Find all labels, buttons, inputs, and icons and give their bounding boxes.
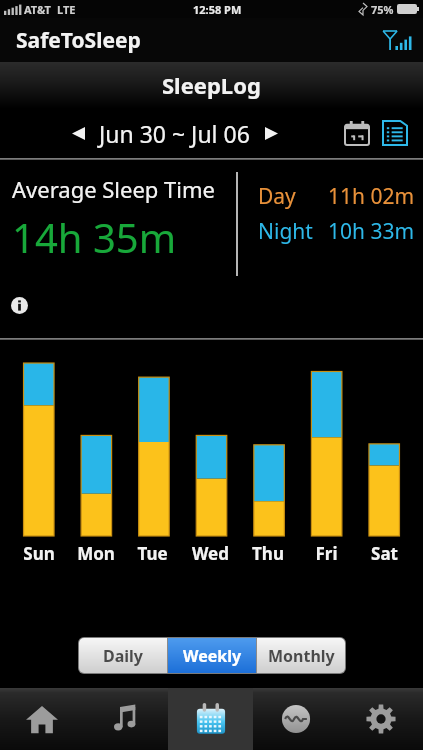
button[interactable]: Pick date — [339, 115, 375, 151]
button[interactable]: Settings — [338, 688, 423, 750]
staticText: Monthly — [268, 645, 335, 667]
staticText: Jun 30 ~ Jul 06 — [99, 118, 250, 149]
staticText: Average Sleep Time — [12, 174, 215, 204]
staticText: Sat — [371, 542, 398, 565]
button[interactable]: Sleep log — [168, 688, 253, 750]
staticText: 75% — [371, 2, 394, 17]
button[interactable]: Monitor — [253, 688, 338, 750]
staticText: Daily — [103, 645, 143, 667]
button[interactable]: Music — [84, 688, 168, 750]
staticText: 11h 02m — [328, 182, 415, 211]
staticText: Fri — [315, 542, 338, 565]
button[interactable]: List view — [377, 115, 413, 151]
staticText: Tue — [137, 542, 168, 565]
staticText: SafeToSleep — [16, 26, 141, 55]
button[interactable]: Previous week — [63, 118, 93, 148]
staticText: LTE — [57, 2, 76, 17]
staticText: Wed — [192, 542, 229, 565]
staticText: Day — [258, 182, 328, 211]
button[interactable]: Signal status — [377, 23, 411, 57]
button[interactable]: Weekly — [168, 638, 256, 673]
button[interactable]: Information — [8, 294, 30, 316]
staticText: 14h 35m — [12, 210, 177, 264]
staticText: Thu — [252, 542, 284, 565]
button[interactable]: Home — [0, 688, 84, 750]
staticText: AT&T — [24, 2, 51, 17]
staticText: Night — [258, 217, 328, 246]
button[interactable]: Next week — [256, 118, 286, 148]
staticText: 12:58 PM — [193, 2, 242, 17]
staticText: Sun — [23, 542, 55, 565]
staticText: Weekly — [183, 645, 242, 667]
button[interactable]: Monthly — [257, 638, 345, 673]
button[interactable]: Daily — [79, 638, 167, 673]
staticText: SleepLog — [162, 70, 261, 100]
staticText: Mon — [77, 542, 115, 565]
staticText: 10h 33m — [328, 217, 415, 246]
